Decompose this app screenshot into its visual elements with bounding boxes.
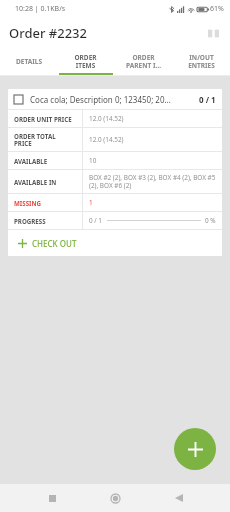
staticText: 12.0 (14.52) bbox=[89, 114, 124, 123]
button[interactable]: Select item bbox=[8, 89, 222, 109]
button[interactable]: Add order item bbox=[174, 428, 216, 470]
staticText: AVAILABLE IN bbox=[14, 178, 57, 186]
staticText: ORDER ITEMS bbox=[74, 53, 97, 70]
staticText: AVAILABLE bbox=[14, 157, 48, 165]
button[interactable]: DETAILS bbox=[0, 48, 57, 75]
staticText: ORDER TOTAL PRICE bbox=[14, 132, 56, 148]
staticText: ORDER UNIT PRICE bbox=[14, 115, 72, 123]
staticText: ORDER PARENT I… bbox=[126, 53, 161, 70]
staticText: 10 bbox=[89, 156, 97, 165]
staticText: Coca cola; Description 0; 123450; 20… bbox=[30, 94, 196, 105]
staticText: MISSING bbox=[14, 199, 41, 207]
button[interactable]: ORDER ITEMS bbox=[57, 48, 114, 75]
staticText: 61% bbox=[210, 4, 224, 14]
staticText: DETAILS bbox=[16, 57, 42, 66]
button[interactable]: CHECK OUT bbox=[8, 230, 222, 256]
button[interactable]: More options bbox=[202, 22, 224, 44]
staticText: 1 bbox=[89, 198, 93, 207]
staticText: 10:28 | 0.1KB/s bbox=[15, 4, 66, 14]
staticText: 0 % bbox=[205, 216, 216, 225]
staticText: CHECK OUT bbox=[32, 238, 77, 249]
staticText: IN/OUT ENTRIES bbox=[188, 53, 215, 70]
staticText: BOX #2 (2), BOX #3 (2), BOX #4 (2), BOX … bbox=[89, 173, 218, 190]
button[interactable]: Back bbox=[167, 486, 191, 510]
staticText: 0 / 1 bbox=[199, 94, 216, 105]
button[interactable]: Home bbox=[103, 486, 127, 510]
staticText: 12.0 (14.52) bbox=[89, 135, 124, 144]
staticText: 0 / 1 bbox=[89, 216, 103, 225]
staticText: Order #2232 bbox=[9, 24, 87, 42]
button[interactable]: ORDER PARENT I… bbox=[114, 48, 172, 75]
button[interactable]: Select item bbox=[14, 95, 23, 104]
button[interactable]: IN/OUT ENTRIES bbox=[172, 48, 230, 75]
button[interactable]: Recent apps bbox=[40, 486, 64, 510]
staticText: PROGRESS bbox=[14, 217, 46, 225]
